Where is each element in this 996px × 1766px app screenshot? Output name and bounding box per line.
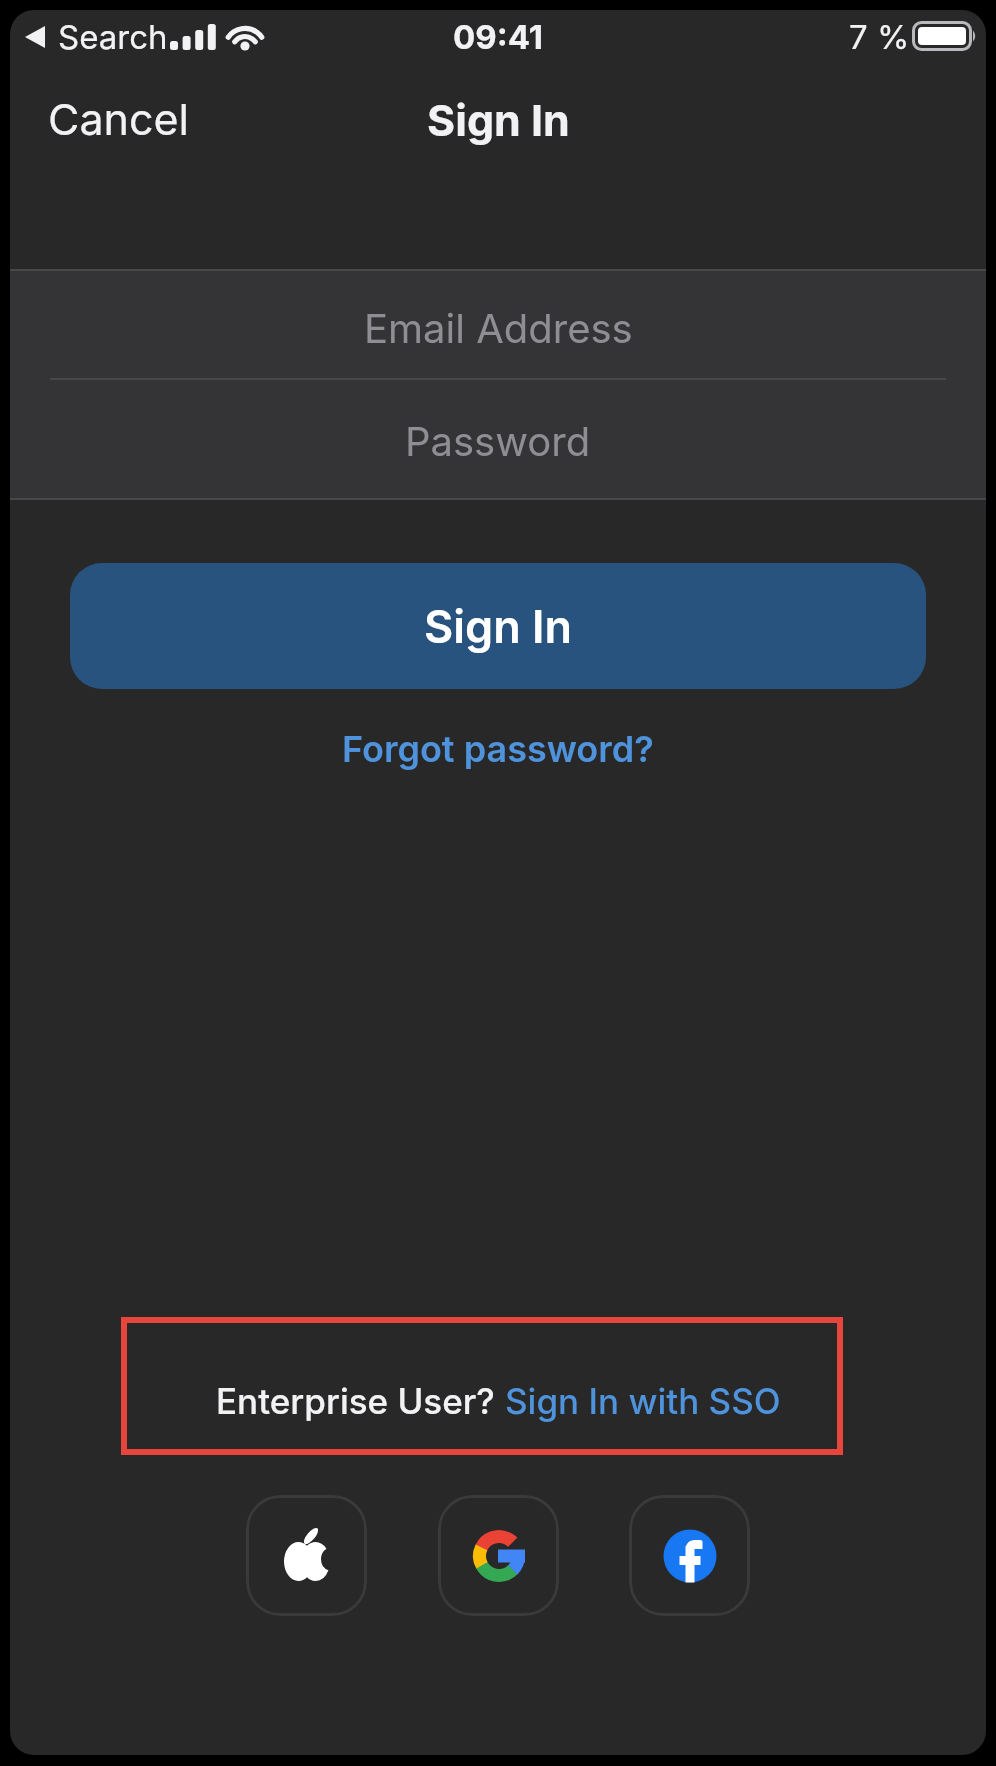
staticText: 09:41 <box>453 17 543 57</box>
staticText: Cancel <box>48 93 190 145</box>
button[interactable]: Forgot password? <box>342 717 654 761</box>
button[interactable] <box>438 1495 559 1616</box>
button[interactable]: Email Address <box>10 269 986 383</box>
staticText: Enterprise User? <box>216 1380 505 1422</box>
staticText: Sign In <box>427 94 570 146</box>
staticText: Sign In <box>424 599 573 653</box>
staticText: Forgot password? <box>342 727 654 771</box>
button[interactable]: Sign In with SSO <box>505 1380 781 1422</box>
button[interactable] <box>629 1495 750 1616</box>
button[interactable] <box>246 1495 367 1616</box>
button[interactable]: Password <box>10 384 986 498</box>
staticText: Search <box>58 17 168 57</box>
button[interactable]: Cancel <box>40 84 220 154</box>
staticText: Sign In with SSO <box>505 1380 781 1422</box>
staticText: Email Address <box>364 304 633 352</box>
staticText: 7 % <box>849 17 910 57</box>
button[interactable]: Sign In <box>70 563 926 689</box>
staticText: Password <box>405 417 591 465</box>
